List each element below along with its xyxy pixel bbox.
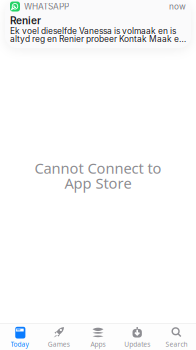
button[interactable]: Search <box>157 326 196 349</box>
staticText: Search <box>165 340 187 349</box>
staticText: Ek voel dieselfde Vanessa is volmaak en … <box>10 26 186 44</box>
staticText: Cannot Connect to <box>34 158 161 178</box>
staticText: now <box>169 1 186 11</box>
staticText: Updates <box>124 340 150 349</box>
staticText: Apps <box>90 340 105 349</box>
button[interactable]: Today <box>0 326 39 349</box>
staticText: WHATSAPP <box>24 1 69 11</box>
staticText: Games <box>48 340 70 349</box>
staticText: App Store <box>64 173 131 193</box>
button[interactable]: WHATSAPP <box>5 0 191 48</box>
button[interactable]: Updates <box>118 326 157 349</box>
staticText: Today <box>11 340 29 349</box>
button[interactable]: Games <box>39 326 78 349</box>
staticText: Renier <box>10 14 41 27</box>
button[interactable]: Apps <box>78 326 118 349</box>
